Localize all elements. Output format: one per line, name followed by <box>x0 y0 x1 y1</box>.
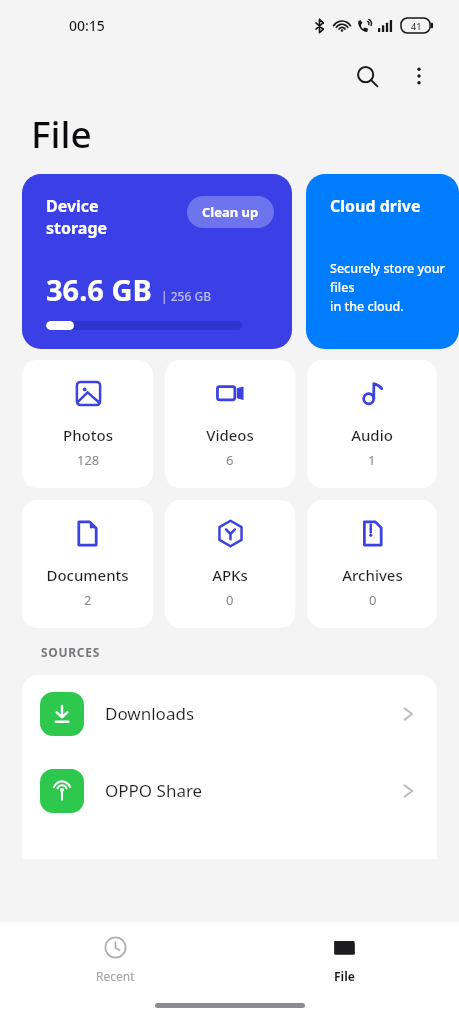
button[interactable]: Archives <box>307 500 437 628</box>
staticText: Recent <box>96 968 135 984</box>
staticText: Clean up <box>202 203 259 221</box>
button[interactable]: Audio <box>307 360 437 488</box>
button[interactable]: Clean up <box>187 196 274 228</box>
staticText: 0 <box>369 591 377 609</box>
staticText: 6 <box>226 451 234 469</box>
staticText: 0 <box>226 591 234 609</box>
staticText: 128 <box>77 451 100 469</box>
staticText: Device storage <box>46 195 108 239</box>
staticText: Photos <box>63 425 113 445</box>
staticText: 36.6 GB <box>46 270 152 309</box>
staticText: Audio <box>351 425 393 445</box>
staticText: 2 <box>84 591 92 609</box>
button[interactable]: Cloud drive <box>306 174 459 349</box>
button[interactable]: Search <box>345 54 389 98</box>
staticText: 41 <box>411 20 422 32</box>
button[interactable]: More options <box>399 56 439 96</box>
staticText: OPPO Share <box>105 779 203 802</box>
button[interactable]: Recent <box>70 922 160 984</box>
button[interactable]: File <box>299 922 389 984</box>
button[interactable]: Device storage <box>22 174 292 349</box>
button[interactable]: Photos <box>22 360 153 488</box>
button[interactable]: Documents <box>22 500 153 628</box>
staticText: | 256 GB <box>161 288 212 304</box>
staticText: APKs <box>212 565 248 585</box>
staticText: Documents <box>46 565 129 585</box>
staticText: Cloud drive <box>330 195 421 217</box>
staticText: 00:15 <box>69 16 105 35</box>
button[interactable]: OPPO Share <box>22 752 437 829</box>
button[interactable]: APKs <box>165 500 295 628</box>
staticText: File <box>31 108 92 158</box>
staticText: Videos <box>206 425 254 445</box>
staticText: Archives <box>342 565 403 585</box>
staticText: Downloads <box>105 702 195 725</box>
staticText: 1 <box>368 451 376 469</box>
button[interactable]: Downloads <box>22 675 437 752</box>
staticText: SOURCES <box>41 644 100 660</box>
button[interactable]: Videos <box>165 360 295 488</box>
staticText: Securely store your files in the cloud. <box>330 260 459 315</box>
staticText: File <box>334 968 355 984</box>
